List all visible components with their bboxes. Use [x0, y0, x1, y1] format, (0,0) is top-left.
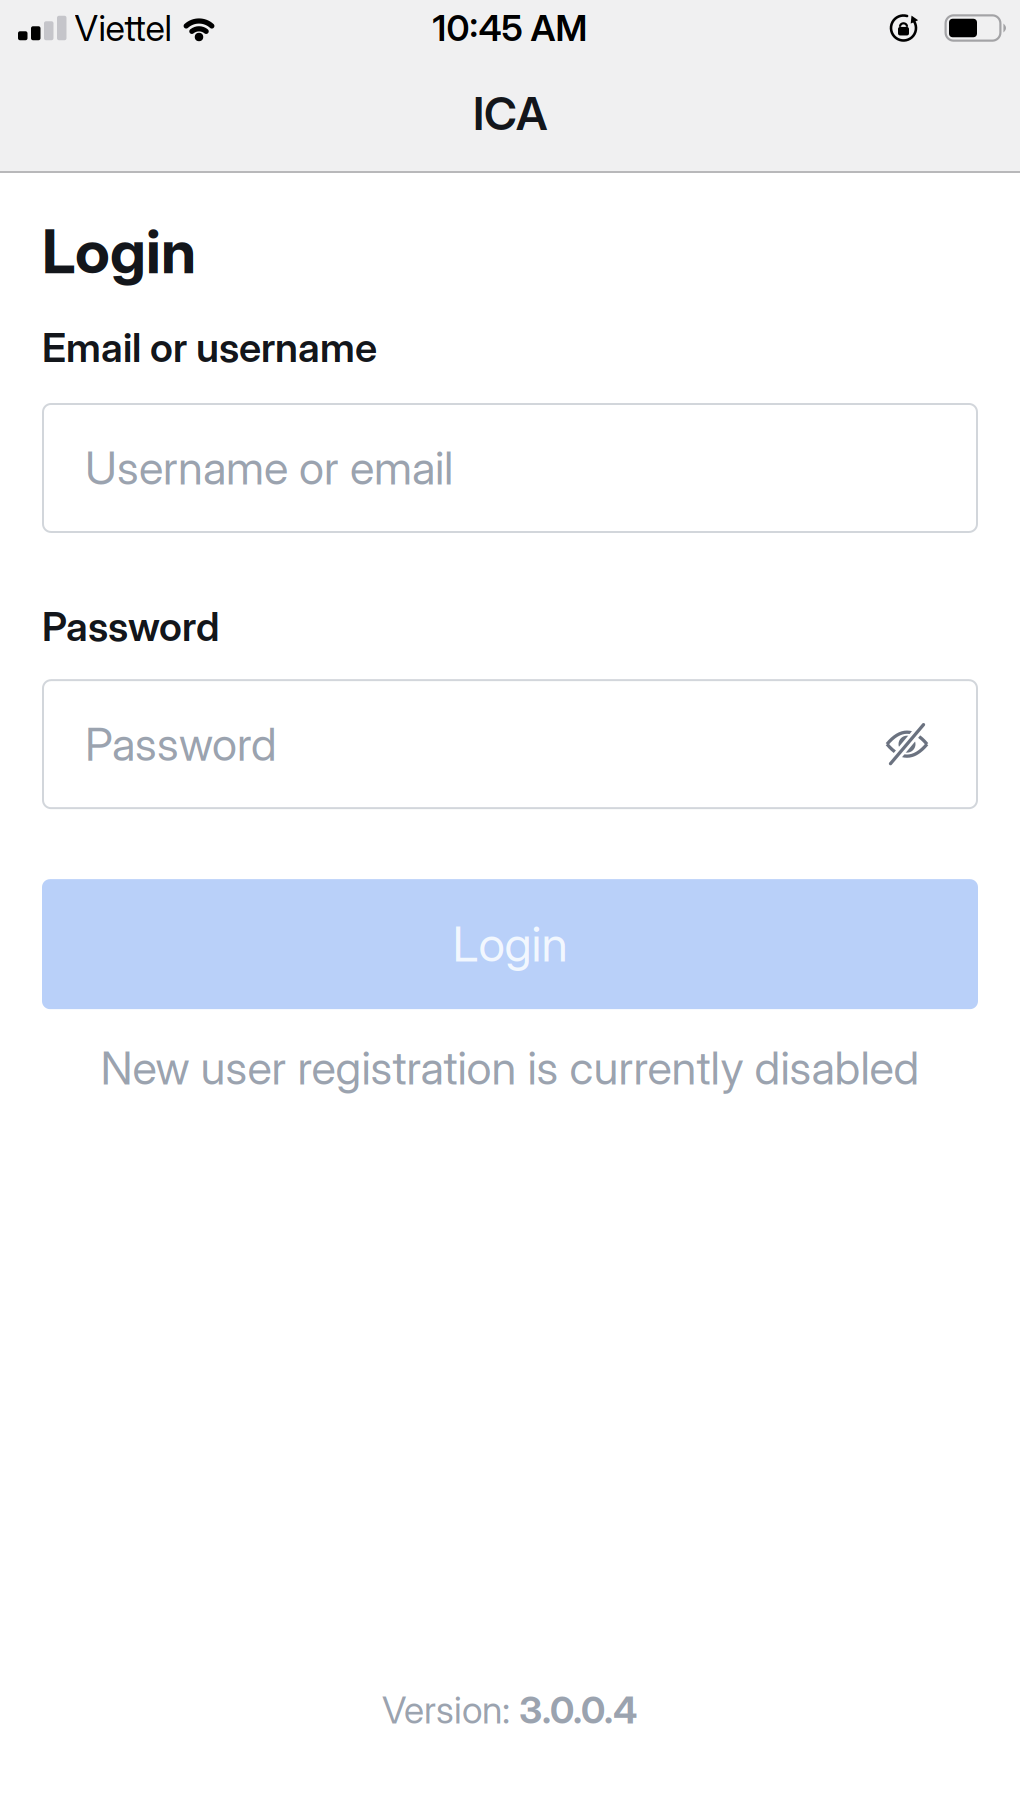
staticText: Login: [42, 216, 196, 287]
staticText: 10:45 AM: [432, 7, 587, 49]
button[interactable]: Show password: [884, 721, 930, 767]
textField[interactable]: Username or email: [42, 403, 978, 533]
staticText: Version: 3.0.0.4: [382, 1688, 638, 1732]
staticText: Viettel: [74, 7, 171, 49]
staticText: Password: [42, 603, 219, 650]
staticText: Username or email: [85, 441, 453, 495]
staticText: ICA: [473, 87, 547, 140]
staticText: Email or username: [42, 324, 377, 371]
secureTextField[interactable]: Password: [42, 679, 978, 809]
staticText: Login: [452, 916, 567, 972]
button[interactable]: Login: [42, 879, 978, 1009]
staticText: New user registration is currently disab…: [100, 1041, 919, 1095]
staticText: Password: [85, 717, 277, 771]
